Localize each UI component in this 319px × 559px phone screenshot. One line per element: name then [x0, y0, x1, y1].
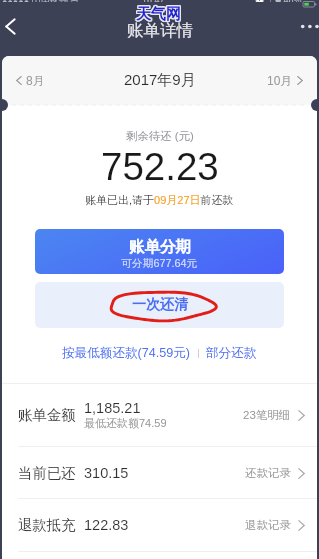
staticText: 当前已还 [18, 464, 76, 482]
staticText: 账单详情 [127, 20, 193, 41]
staticText: 10月 [267, 73, 293, 88]
button[interactable]: Back [0, 8, 25, 44]
staticText: 122.83 [84, 517, 129, 533]
staticText: 310.15 [84, 465, 129, 481]
staticText: ⏱ ᛏ ⬤ 46% [254, 0, 302, 2]
staticText: 23笔明细 [243, 408, 291, 422]
staticText: 天气网 [136, 4, 181, 23]
button[interactable]: 按最低额还款(74.59元) [62, 345, 191, 361]
button[interactable]: 一次还清 [35, 282, 284, 328]
button[interactable]: 当前已还 [2, 447, 317, 498]
staticText: 天气网 [136, 6, 181, 25]
staticText: 账单已出,请于09月27日前还款 [85, 193, 234, 207]
button[interactable]: 8月 [2, 63, 59, 98]
staticText: 天气网 [135, 5, 180, 24]
staticText: 退款抵充 [18, 516, 76, 534]
staticText: 退款记录 [245, 518, 291, 532]
staticText: 天气网 [137, 5, 182, 24]
staticText: 天气网 [135, 6, 180, 25]
button[interactable]: 账单分期 [35, 229, 284, 274]
staticText: 天气网 [135, 4, 180, 23]
staticText: 可分期677.64元 [121, 257, 198, 271]
staticText: 剩余待还 (元) [126, 129, 194, 143]
staticText: 16:47 [142, 0, 165, 2]
staticText: 1,185.21 [84, 400, 141, 416]
staticText: 最低还款额74.59 [84, 416, 167, 430]
staticText: 8月 [26, 73, 45, 88]
button[interactable]: 退款抵充 [2, 499, 317, 551]
staticText: ●●●●● 中国移动 ᯤ [2, 0, 79, 2]
staticText: 2017年9月 [124, 71, 196, 90]
staticText: 752.23 [101, 145, 219, 188]
button[interactable]: 10月 [253, 63, 317, 98]
staticText: 天气网 [137, 6, 182, 25]
staticText: 一次还清 [132, 296, 188, 314]
staticText: 还款记录 [245, 466, 291, 480]
button[interactable]: 部分还款 [206, 345, 257, 361]
staticText: 天气网 [136, 5, 181, 24]
button[interactable]: 账单金额 [2, 384, 317, 446]
button[interactable]: More options [285, 8, 319, 44]
staticText: 账单金额 [18, 406, 76, 424]
staticText: 天气网 [137, 4, 182, 23]
staticText: 账单分期 [129, 237, 191, 257]
